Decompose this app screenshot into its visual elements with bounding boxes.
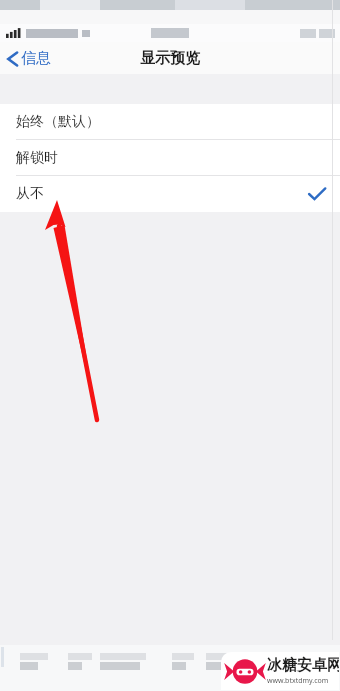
button[interactable]: 从不: [0, 176, 340, 212]
staticText: 从不: [16, 185, 44, 203]
button[interactable]: 信息: [0, 49, 59, 68]
other: Selected: [308, 187, 326, 201]
button[interactable]: 解锁时: [0, 140, 340, 176]
staticText: 显示预览: [140, 49, 200, 68]
staticText: www.btxtdmy.com: [267, 676, 329, 686]
button[interactable]: 始终（默认）: [0, 104, 340, 140]
staticText: 冰糖安卓网: [267, 656, 339, 675]
staticText: 解锁时: [16, 149, 58, 167]
staticText: 信息: [21, 49, 51, 68]
staticText: 始终（默认）: [16, 113, 100, 131]
